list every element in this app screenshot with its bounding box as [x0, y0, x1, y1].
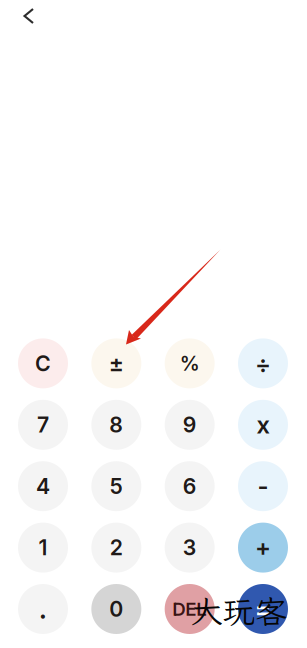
button[interactable]: 0 [91, 584, 141, 634]
button[interactable]: DEL [165, 584, 215, 634]
staticText: 8 [109, 412, 123, 438]
button[interactable]: Back [18, 4, 40, 28]
button[interactable]: 3 [165, 523, 215, 573]
button[interactable]: 8 [91, 400, 141, 450]
button[interactable]: + [238, 523, 288, 573]
staticText: 5 [110, 473, 123, 499]
staticText: 0 [109, 596, 123, 622]
staticText: 6 [183, 473, 197, 499]
button[interactable]: % [165, 338, 215, 388]
button[interactable]: 7 [18, 400, 68, 450]
staticText: = [254, 594, 271, 624]
button[interactable]: 9 [165, 400, 215, 450]
button[interactable]: ÷ [238, 338, 288, 388]
staticText: 大玩客 [191, 590, 287, 632]
button[interactable]: 2 [91, 523, 141, 573]
button[interactable]: 1 [18, 523, 68, 573]
staticText: 4 [36, 473, 50, 499]
button[interactable]: 4 [18, 461, 68, 511]
button[interactable]: C [18, 338, 68, 388]
staticText: ± [109, 350, 124, 377]
button[interactable]: x [238, 400, 288, 450]
staticText: 1 [38, 535, 47, 560]
staticText: DEL [172, 598, 207, 620]
button[interactable]: = [238, 584, 288, 634]
staticText: x [256, 410, 269, 439]
staticText: . [39, 593, 47, 625]
button[interactable]: - [238, 461, 288, 511]
button[interactable]: 6 [165, 461, 215, 511]
staticText: 7 [37, 412, 49, 438]
staticText: % [180, 351, 200, 375]
staticText: + [255, 533, 271, 562]
staticText: 9 [183, 412, 197, 438]
staticText: 3 [183, 535, 197, 560]
button[interactable]: 5 [91, 461, 141, 511]
staticText: - [257, 472, 268, 501]
staticText: C [35, 350, 51, 376]
staticText: 2 [110, 535, 123, 560]
button[interactable]: ± [91, 338, 141, 388]
button[interactable]: . [18, 584, 68, 634]
staticText: ÷ [255, 349, 271, 378]
